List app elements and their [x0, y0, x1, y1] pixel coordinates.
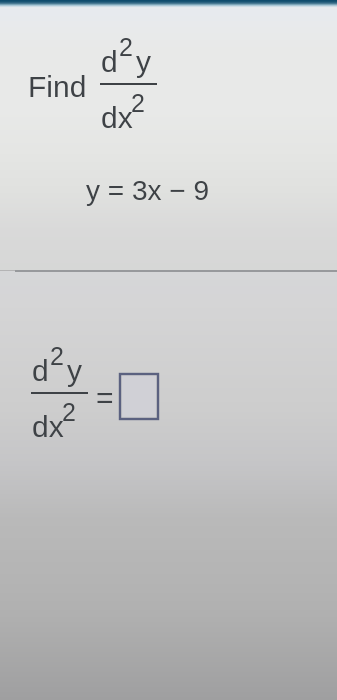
staticText: y: [136, 45, 151, 79]
staticText: y = 3x − 9: [86, 175, 209, 206]
staticText: dx: [101, 101, 133, 135]
staticText: 2: [62, 398, 76, 426]
staticText: 2: [131, 89, 145, 117]
button[interactable]: Answer input box: [120, 374, 158, 419]
staticText: =: [96, 381, 114, 415]
staticText: 2: [50, 342, 64, 370]
staticText: Find: [28, 70, 87, 104]
staticText: d: [101, 45, 118, 79]
staticText: d: [32, 354, 49, 388]
staticText: dx: [32, 410, 64, 444]
staticText: 2: [119, 33, 133, 61]
staticText: y: [67, 354, 82, 388]
